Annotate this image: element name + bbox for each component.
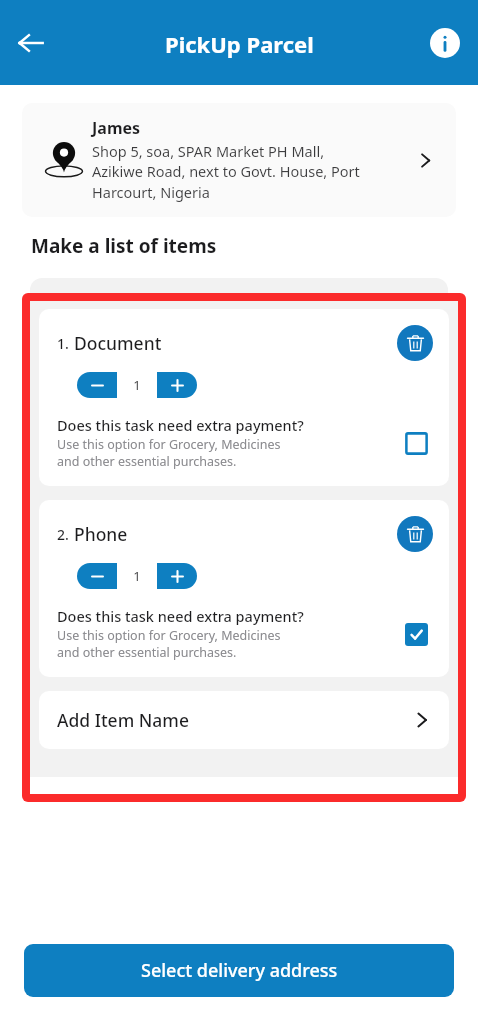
button[interactable]: James <box>22 103 456 217</box>
button[interactable]: Delete item 1 <box>397 325 433 361</box>
button[interactable]: Increase quantity <box>157 372 197 398</box>
button[interactable]: Extra payment not selected <box>399 426 433 460</box>
button[interactable]: Select delivery address <box>24 944 454 997</box>
button[interactable]: Extra payment selected <box>399 617 433 651</box>
button[interactable]: Add Item Name <box>39 691 449 749</box>
staticText: Select delivery address <box>141 958 338 983</box>
button[interactable]: Decrease quantity <box>77 372 117 398</box>
staticText: 2. <box>57 525 69 544</box>
button[interactable]: Decrease quantity <box>77 563 117 589</box>
staticText: Use this option for Grocery, Medicines a… <box>57 627 281 661</box>
staticText: James <box>92 117 141 139</box>
staticText: Add Item Name <box>57 708 413 732</box>
staticText: Phone <box>74 522 128 546</box>
button[interactable]: Information <box>424 22 466 64</box>
staticText: Make a list of items <box>31 233 217 259</box>
staticText: 1 <box>133 567 141 585</box>
staticText: Does this task need extra payment? <box>57 606 304 626</box>
button[interactable]: Back <box>6 18 56 68</box>
button[interactable]: Delete item 2 <box>397 516 433 552</box>
staticText: Document <box>74 331 162 355</box>
staticText: Does this task need extra payment? <box>57 415 304 435</box>
staticText: 1 <box>133 376 141 394</box>
staticText: 1. <box>57 334 69 353</box>
staticText: PickUp Parcel <box>165 29 314 59</box>
button[interactable]: Increase quantity <box>157 563 197 589</box>
staticText: Shop 5, soa, SPAR Market PH Mall, Azikiw… <box>92 141 360 203</box>
staticText: Use this option for Grocery, Medicines a… <box>57 436 281 470</box>
